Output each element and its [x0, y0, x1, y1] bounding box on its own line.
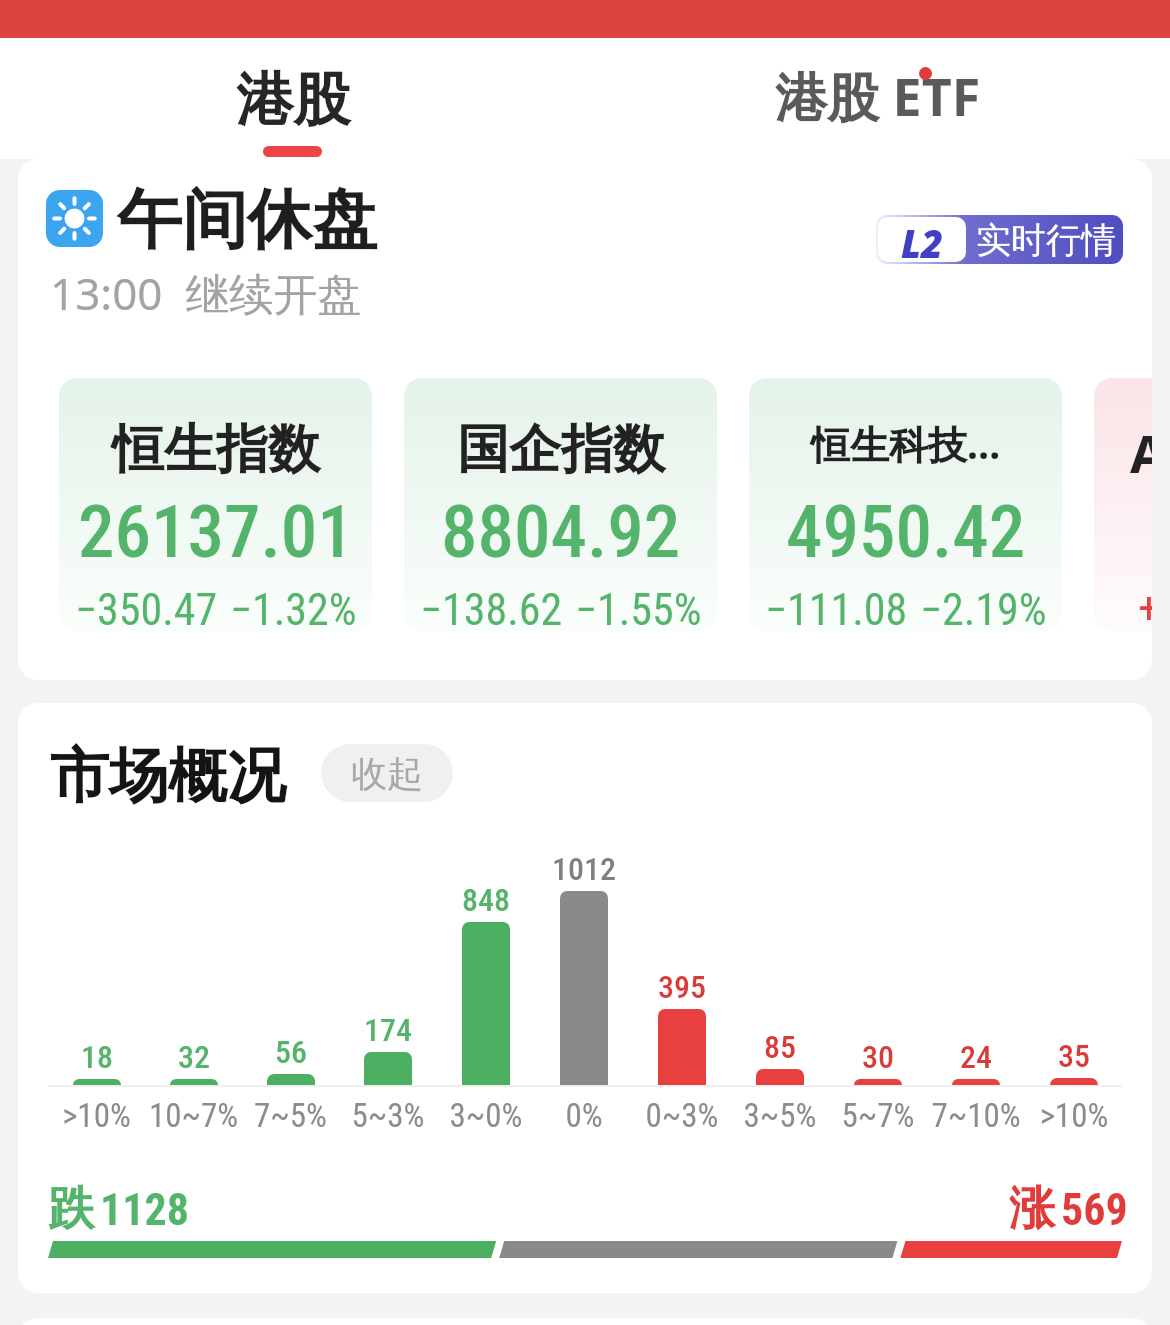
button[interactable]: 港股	[0, 38, 585, 159]
staticText: +198.24 +1.22%	[1138, 582, 1152, 631]
staticText: 5~3%	[339, 1096, 437, 1135]
button[interactable]: 恒生科技…	[749, 378, 1062, 631]
staticText: 实时行情	[976, 218, 1116, 262]
button[interactable]: A股指数	[1094, 378, 1152, 631]
staticText: 174	[364, 1011, 412, 1049]
button[interactable]: 国企指数	[404, 378, 717, 631]
staticText: 1128	[100, 1184, 189, 1236]
staticText: 1012	[552, 850, 616, 888]
staticText: 国企指数	[457, 417, 665, 483]
staticText: 3~5%	[731, 1096, 829, 1135]
staticText: −350.47	[75, 584, 218, 631]
staticText: 18	[81, 1038, 113, 1076]
staticText: A股指数	[1130, 417, 1152, 488]
staticText: 30	[862, 1038, 894, 1076]
staticText: 85	[764, 1028, 796, 1066]
staticText: 10~7%	[145, 1096, 242, 1135]
staticText: 35	[1058, 1037, 1090, 1075]
staticText: 24	[960, 1038, 992, 1076]
staticText: 7~10%	[927, 1096, 1025, 1135]
staticText: 恒生科技…	[811, 417, 1001, 470]
other: Midday break	[46, 190, 103, 247]
staticText: 8804.92	[441, 489, 681, 575]
staticText: 港股	[236, 64, 350, 136]
staticText: 5~7%	[829, 1096, 927, 1135]
staticText: 32	[178, 1038, 210, 1076]
staticText: 午间休盘	[117, 179, 377, 261]
staticText: 0~3%	[633, 1096, 731, 1135]
staticText: 56	[275, 1033, 307, 1071]
staticText: −138.62	[420, 584, 563, 631]
staticText: 848	[462, 881, 510, 919]
button[interactable]: 收起	[321, 744, 453, 802]
staticText: 0%	[535, 1096, 633, 1135]
staticText: >10%	[1025, 1096, 1123, 1135]
staticText: 569	[1061, 1184, 1128, 1236]
staticText: −2.19%	[920, 584, 1047, 631]
button[interactable]: 恒生指数	[59, 378, 372, 631]
staticText: −1.32%	[230, 584, 357, 631]
button[interactable]: L2	[876, 215, 1123, 264]
staticText: 跌	[48, 1180, 94, 1238]
staticText: 26137.01	[78, 489, 354, 575]
staticText: 港股 ETF	[775, 60, 981, 131]
staticText: 395	[658, 968, 706, 1006]
staticText: 13:00 继续开盘	[50, 263, 362, 323]
staticText: 收起	[351, 751, 423, 796]
staticText: −1.55%	[575, 584, 702, 631]
staticText: >10%	[48, 1096, 145, 1135]
staticText: −111.08	[765, 584, 908, 631]
staticText: 市场概况	[50, 739, 286, 813]
staticText: L2	[901, 217, 944, 262]
staticText: 涨	[1009, 1180, 1055, 1238]
staticText: 3~0%	[437, 1096, 535, 1135]
staticText: 4950.42	[786, 489, 1026, 575]
button[interactable]: 港股 ETF	[585, 38, 1170, 159]
staticText: 7~5%	[242, 1096, 339, 1135]
staticText: 恒生指数	[112, 417, 320, 483]
